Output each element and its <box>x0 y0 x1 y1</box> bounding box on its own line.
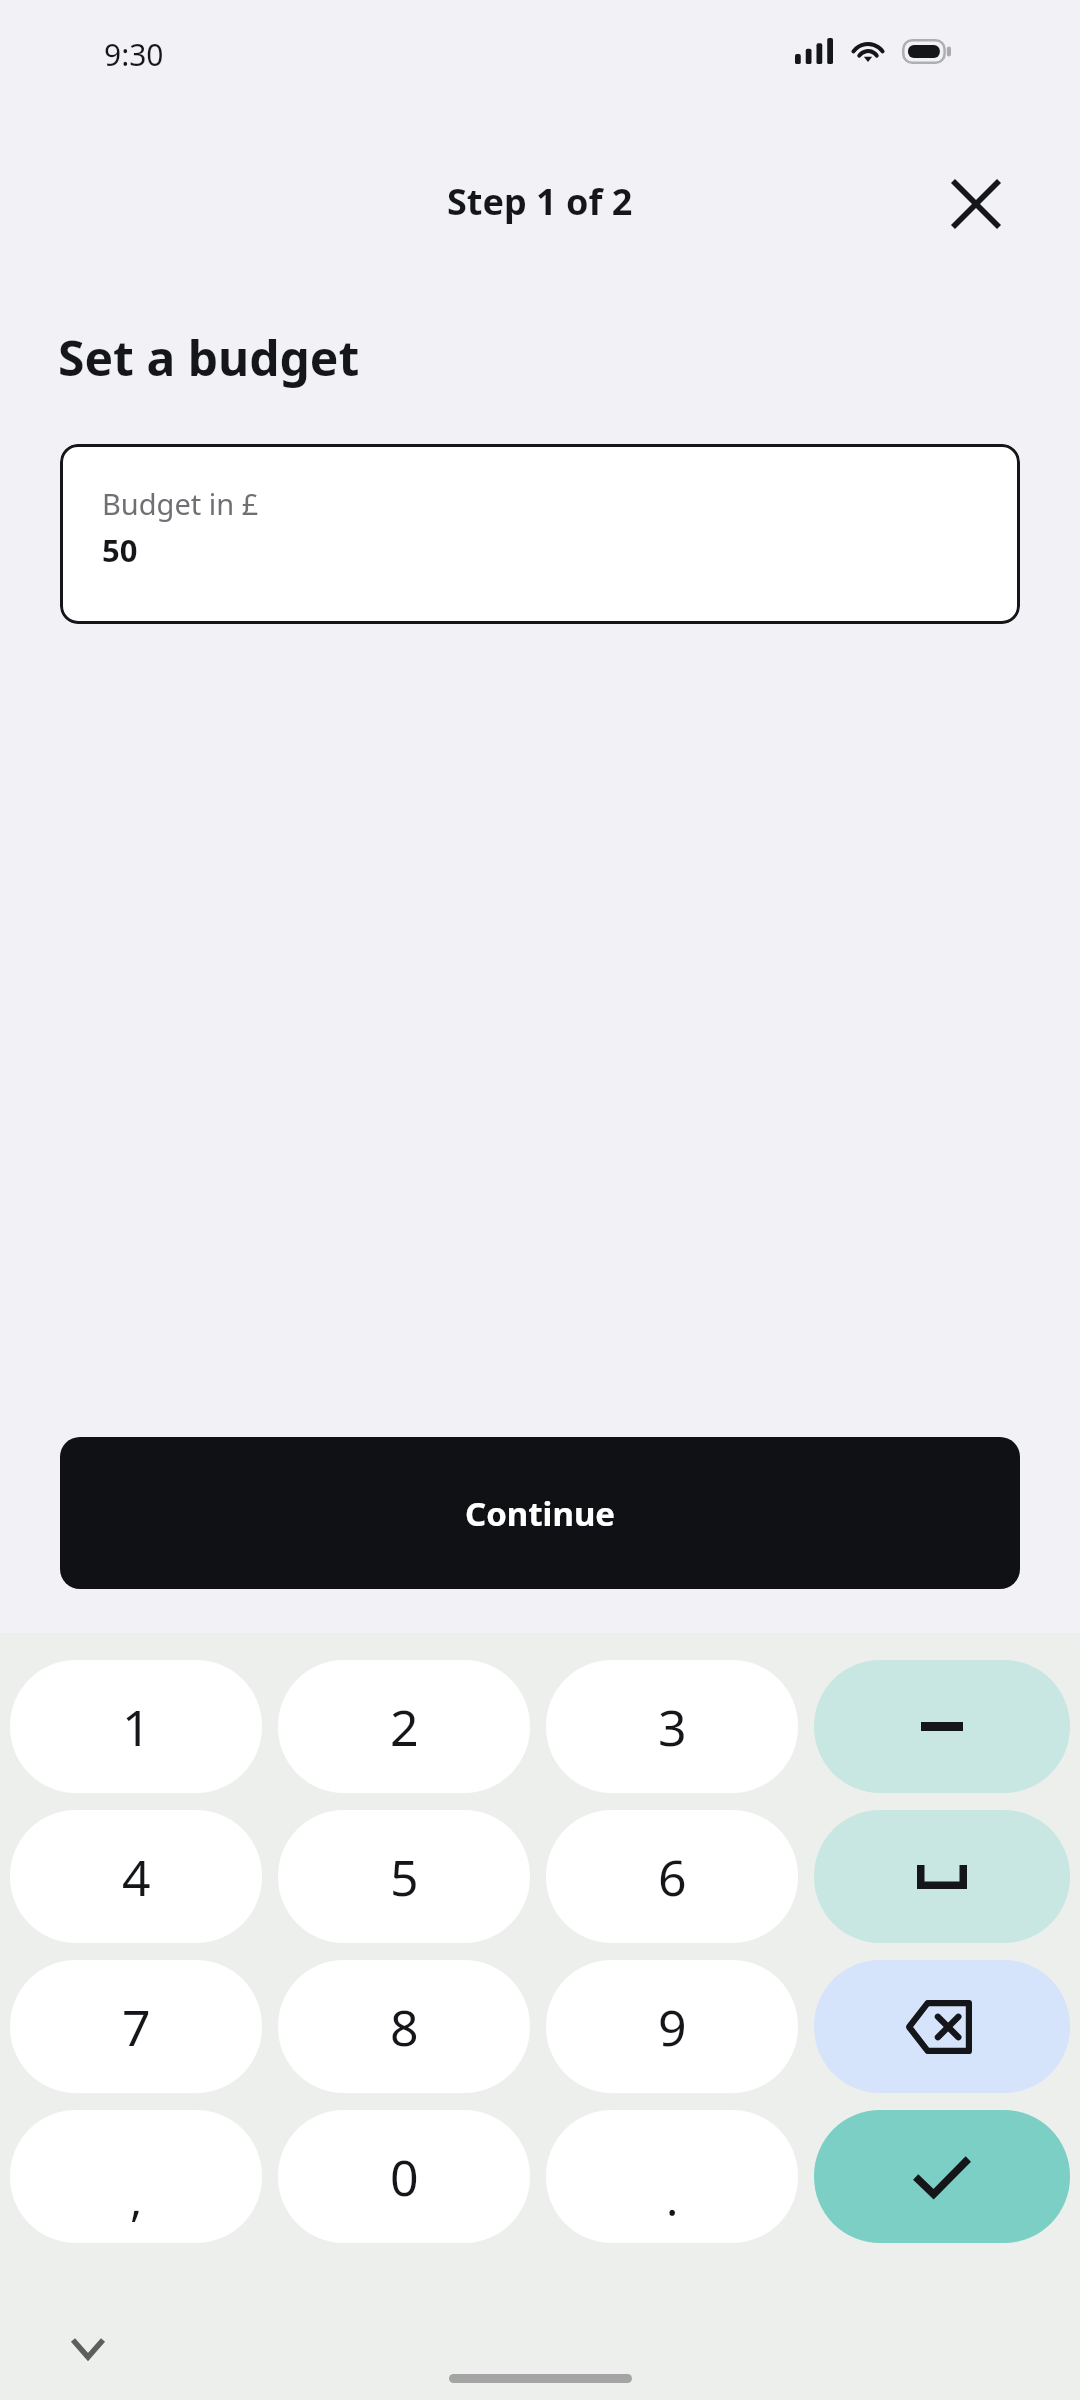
staticText: . <box>666 2167 679 2230</box>
staticText: 6 <box>658 1843 687 1911</box>
button[interactable]: Hide keyboard <box>52 2312 124 2384</box>
button[interactable]: . <box>546 2110 798 2243</box>
staticText: Set a budget <box>58 325 360 390</box>
staticText: 3 <box>658 1693 687 1761</box>
staticText: 50 <box>102 529 138 571</box>
staticText: 5 <box>390 1843 419 1911</box>
button[interactable]: Backspace <box>814 1960 1070 2093</box>
button[interactable]: Space <box>814 1810 1070 1943</box>
staticText: 0 <box>390 2143 419 2211</box>
staticText: Continue <box>465 1491 616 1536</box>
button[interactable]: 7 <box>10 1960 262 2093</box>
button[interactable]: 1 <box>10 1660 262 1793</box>
button[interactable]: 5 <box>278 1810 530 1943</box>
button[interactable]: 4 <box>10 1810 262 1943</box>
button[interactable]: Close <box>930 158 1022 250</box>
staticText: 8 <box>390 1993 419 2061</box>
button[interactable]: 0 <box>278 2110 530 2243</box>
button[interactable]: , <box>10 2110 262 2243</box>
staticText: Step 1 of 2 <box>447 177 633 226</box>
staticText: 2 <box>390 1693 419 1761</box>
button[interactable]: 2 <box>278 1660 530 1793</box>
button[interactable]: Done <box>814 2110 1070 2243</box>
staticText: , <box>130 2167 143 2230</box>
button[interactable]: 3 <box>546 1660 798 1793</box>
button[interactable]: 9 <box>546 1960 798 2093</box>
button[interactable]: 8 <box>278 1960 530 2093</box>
button[interactable]: 6 <box>546 1810 798 1943</box>
staticText: 7 <box>122 1993 151 2061</box>
staticText: 9 <box>658 1993 687 2061</box>
button[interactable]: Continue <box>60 1437 1020 1589</box>
staticText: 9:30 <box>104 34 164 75</box>
staticText: Budget in £ <box>102 484 259 523</box>
staticText: 4 <box>122 1843 151 1911</box>
staticText: 1 <box>122 1693 151 1761</box>
button[interactable]: Budget in £ <box>60 444 1020 624</box>
button[interactable]: Minus <box>814 1660 1070 1793</box>
